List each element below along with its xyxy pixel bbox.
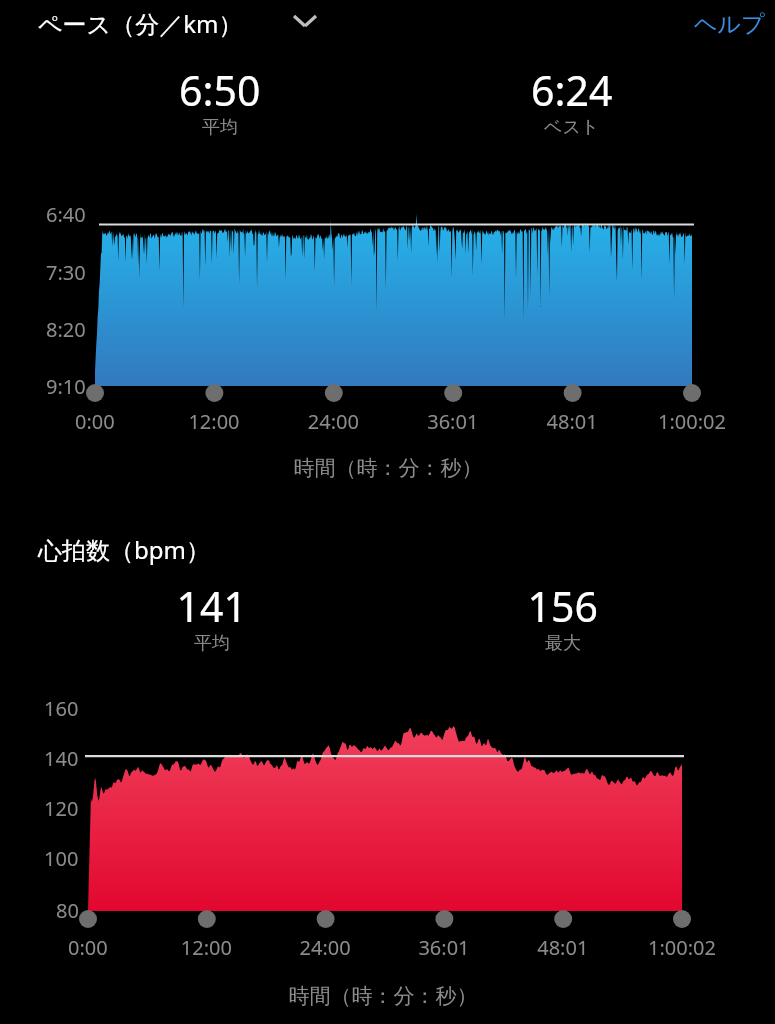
button[interactable]: ペース（分／km） メトリックを選択 bbox=[30, 1, 330, 46]
button[interactable]: ヘルプ bbox=[668, 1, 770, 46]
